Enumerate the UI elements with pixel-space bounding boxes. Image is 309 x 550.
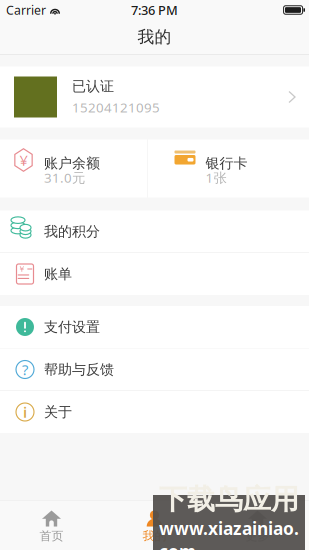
- button[interactable]: 我的积分: [0, 210, 309, 252]
- staticText: ¥: [19, 150, 27, 170]
- staticText: 更多: [245, 528, 269, 544]
- staticText: 支付设置: [44, 318, 100, 336]
- staticText: 关于: [44, 403, 72, 421]
- button[interactable]: i: [0, 391, 309, 433]
- staticText: ￥: [18, 264, 26, 274]
- button[interactable]: 已认证: [0, 66, 309, 127]
- staticText: 银行卡: [205, 154, 247, 172]
- button[interactable]: 支付设置: [0, 306, 309, 348]
- button[interactable]: ¥: [0, 139, 147, 197]
- button[interactable]: ?: [0, 348, 309, 390]
- staticText: 我的: [142, 528, 166, 544]
- staticText: 下载鸟应用: [159, 482, 299, 517]
- staticText: i: [23, 402, 27, 422]
- staticText: 账户余额: [44, 154, 100, 172]
- button[interactable]: 我的: [103, 500, 206, 550]
- staticText: 首页: [39, 528, 63, 544]
- staticText: ?: [22, 360, 28, 379]
- staticText: 31.0元: [44, 168, 85, 187]
- staticText: 账单: [44, 265, 72, 283]
- staticText: 已认证: [72, 78, 114, 95]
- staticText: 帮助与反馈: [44, 361, 114, 378]
- button[interactable]: 更多: [206, 500, 309, 550]
- button[interactable]: ￥: [0, 253, 309, 295]
- staticText: Carrier: [6, 2, 46, 18]
- staticText: 7:36 PM: [131, 1, 178, 19]
- staticText: www.xiazainiao.com: [159, 517, 299, 550]
- staticText: 15204121095: [72, 98, 160, 116]
- staticText: 1张: [205, 168, 226, 187]
- staticText: 我的: [137, 26, 171, 47]
- button[interactable]: 首页: [0, 500, 103, 550]
- button[interactable]: 银行卡: [147, 139, 309, 197]
- staticText: 我的积分: [44, 223, 100, 240]
